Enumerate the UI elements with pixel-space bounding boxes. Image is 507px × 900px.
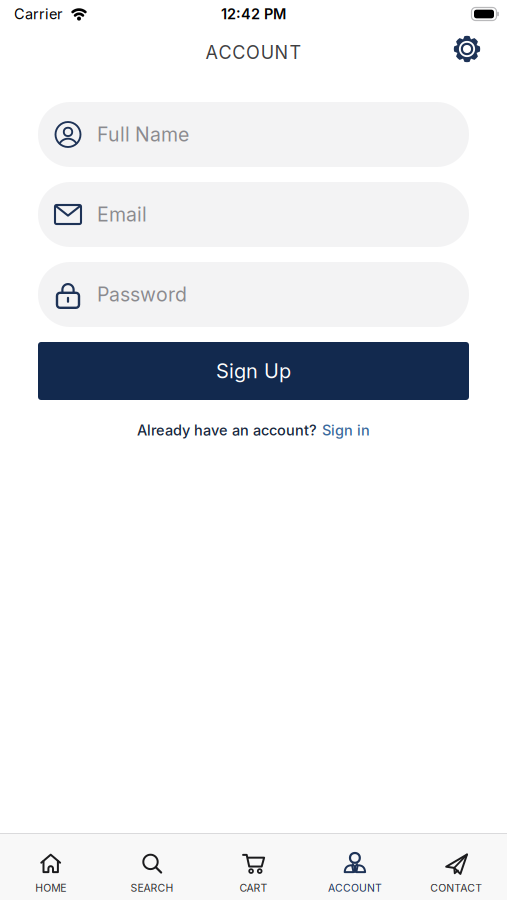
staticText: Carrier (14, 6, 62, 22)
button[interactable]: CONTACT (406, 834, 507, 900)
button[interactable]: CART (203, 834, 304, 900)
staticText: CART (239, 882, 267, 894)
staticText: Full Name (97, 123, 189, 146)
button[interactable]: HOME (0, 834, 101, 900)
button[interactable]: Sign Up (38, 342, 469, 400)
staticText: Password (97, 283, 187, 306)
button[interactable]: SEARCH (101, 834, 203, 900)
staticText: Sign Up (216, 359, 291, 382)
staticText: HOME (35, 882, 66, 894)
staticText: Already have an account? (137, 422, 317, 439)
button[interactable]: Sign in (322, 422, 370, 439)
button[interactable]: Password (38, 262, 469, 327)
staticText: CONTACT (430, 882, 482, 894)
button[interactable]: Settings (453, 35, 507, 63)
button[interactable]: ACCOUNT (304, 834, 406, 900)
button[interactable]: Email (38, 182, 469, 247)
staticText: SEARCH (131, 882, 174, 894)
staticText: ACCOUNT (206, 42, 301, 63)
staticText: Sign in (322, 422, 370, 439)
button[interactable]: Full Name (38, 102, 469, 167)
staticText: Email (97, 203, 147, 226)
staticText: ACCOUNT (328, 882, 382, 894)
staticText: 12:42 PM (221, 6, 286, 22)
